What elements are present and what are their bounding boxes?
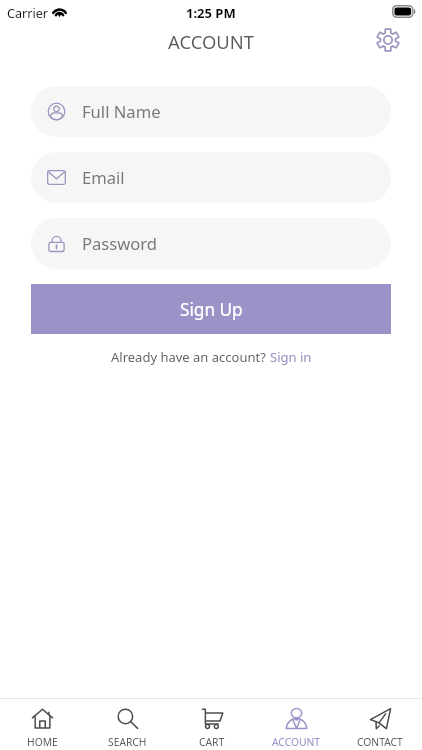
button[interactable]: Settings bbox=[372, 24, 404, 56]
staticText: 1:25 PM bbox=[186, 4, 236, 22]
staticText: SEARCH bbox=[108, 735, 147, 749]
staticText: Sign Up bbox=[180, 298, 243, 321]
button[interactable]: HOME bbox=[0, 699, 85, 750]
button[interactable]: ACCOUNT bbox=[254, 699, 338, 750]
button[interactable]: Sign in bbox=[270, 348, 312, 366]
staticText: ACCOUNT bbox=[272, 735, 321, 749]
button[interactable]: Sign Up bbox=[31, 284, 391, 334]
staticText: Carrier bbox=[7, 5, 48, 22]
staticText: Password bbox=[82, 232, 158, 255]
staticText: Full Name bbox=[82, 100, 161, 123]
staticText: Sign in bbox=[270, 348, 312, 366]
button[interactable]: Email bbox=[31, 152, 391, 203]
staticText: Email bbox=[82, 166, 125, 189]
button[interactable]: CONTACT bbox=[338, 699, 422, 750]
staticText: ACCOUNT bbox=[168, 29, 254, 54]
staticText: HOME bbox=[27, 735, 58, 749]
staticText: Already have an account? bbox=[111, 348, 270, 366]
button[interactable]: Full Name bbox=[31, 86, 391, 137]
button[interactable]: CART bbox=[170, 699, 254, 750]
button[interactable]: Password bbox=[31, 218, 391, 269]
staticText: CONTACT bbox=[357, 735, 403, 749]
staticText: CART bbox=[199, 735, 225, 749]
button[interactable]: SEARCH bbox=[85, 699, 170, 750]
